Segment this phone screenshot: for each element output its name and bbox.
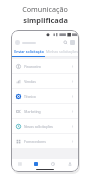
button[interactable]: Técnico <box>12 89 78 103</box>
button[interactable]: Minhas solicitações <box>45 47 78 56</box>
button[interactable]: Financeiro <box>12 59 78 73</box>
button[interactable]: Vendas <box>12 74 78 88</box>
staticText: simplificada <box>23 15 68 25</box>
button[interactable]: Pesquisar <box>63 40 68 45</box>
button[interactable]: Perfil <box>61 159 78 168</box>
button[interactable]: Histórico <box>44 159 61 168</box>
button[interactable]: Marketing <box>12 104 78 118</box>
staticText: Enviar solicitação <box>14 49 44 54</box>
staticText: Marketing <box>24 109 41 114</box>
staticText: Comunicação <box>22 4 68 14</box>
button[interactable]: Perfil <box>15 40 20 45</box>
staticText: Novas solicitações <box>24 124 53 129</box>
staticText: Fornecedores <box>24 139 46 144</box>
button[interactable]: Fornecedores <box>12 134 78 148</box>
staticText: Vendas <box>24 79 36 84</box>
button[interactable]: Menu <box>70 40 75 45</box>
staticText: Financeiro <box>24 64 41 69</box>
button[interactable]: Enviar solicitação <box>12 47 45 56</box>
staticText: Técnico <box>24 94 36 99</box>
button[interactable]: Início <box>12 159 28 168</box>
staticText: Minhas solicitações <box>46 49 78 54</box>
button[interactable]: Novas solicitações <box>12 119 78 133</box>
button[interactable]: Solicitações <box>28 159 44 168</box>
